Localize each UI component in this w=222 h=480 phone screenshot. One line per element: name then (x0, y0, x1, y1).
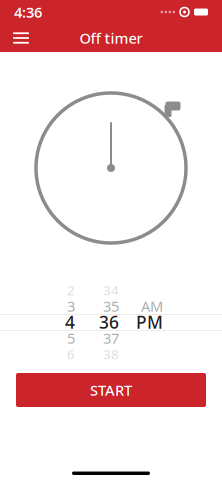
button[interactable]: START (16, 373, 206, 407)
staticText: START (90, 380, 132, 400)
staticText: Off timer (79, 28, 142, 48)
staticText: 37 (103, 328, 119, 348)
staticText: 34 (103, 281, 119, 299)
staticText: 36 (99, 310, 119, 333)
staticText: 38 (103, 345, 119, 363)
staticText: 4:36 (14, 2, 42, 22)
staticText: 6 (67, 345, 75, 363)
staticText: AM (141, 296, 163, 316)
staticText: 35 (103, 296, 119, 316)
staticText: 3 (67, 296, 75, 316)
staticText: 4 (65, 310, 75, 333)
staticText: 5 (67, 328, 75, 348)
staticText: PM (136, 310, 163, 333)
button[interactable]: Menu (6, 24, 36, 52)
staticText: 2 (67, 281, 75, 299)
